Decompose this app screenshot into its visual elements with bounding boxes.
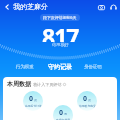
- button[interactable]: Customer service: [107, 1, 119, 13]
- staticText: 我的芝麻分: [13, 2, 48, 11]
- button[interactable]: Scan: [95, 1, 107, 13]
- staticText: 信用极好: [52, 42, 69, 47]
- staticText: 先用后付订单: [25, 104, 42, 108]
- button[interactable]: Back: [1, 1, 13, 13]
- staticText: 免押金额度: [56, 118, 70, 120]
- staticText: 次: [88, 98, 92, 102]
- button[interactable]: 守约记录: [46, 62, 74, 72]
- staticText: 0: [83, 94, 88, 104]
- staticText: 身份证明: [84, 64, 102, 70]
- staticText: 次: [34, 98, 38, 102]
- staticText: 信用租充电宝: [79, 104, 96, 108]
- staticText: 0: [59, 108, 64, 118]
- staticText: 本周数据: [7, 80, 31, 88]
- button[interactable]: 0: [77, 91, 97, 111]
- staticText: 行为权重: [16, 64, 34, 70]
- staticText: 距下次评估还有6天: [43, 15, 77, 20]
- button[interactable]: 身份证明: [82, 63, 104, 71]
- button[interactable]: 0: [23, 91, 43, 111]
- staticText: 将计入下周评估: [33, 82, 62, 87]
- staticText: 元: [64, 112, 68, 116]
- staticText: 守约记录: [48, 63, 72, 71]
- button[interactable]: 0: [53, 105, 73, 120]
- button[interactable]: 行为权重: [14, 63, 36, 71]
- staticText: 817: [42, 21, 79, 42]
- button[interactable]: 距下次评估还有6天: [40, 14, 80, 21]
- staticText: 0: [29, 94, 34, 104]
